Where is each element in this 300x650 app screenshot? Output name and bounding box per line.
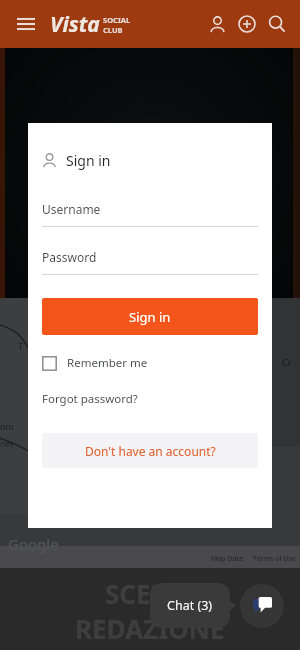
staticText: Cr [282, 356, 292, 368]
staticText: Terms of Use [253, 554, 296, 564]
button[interactable]: Chat (3) [150, 583, 230, 628]
staticText: SOCIAL [103, 15, 131, 25]
staticText: Password [42, 249, 97, 265]
staticText: Don't have an account? [85, 443, 216, 459]
button[interactable]: Account [202, 9, 232, 39]
staticText: nes [0, 438, 14, 449]
staticText: oni [0, 420, 14, 432]
staticText: Remember me [67, 355, 148, 371]
button[interactable]: Sign in [42, 298, 258, 335]
staticText: Sign in [66, 151, 111, 170]
button[interactable]: Remember me [42, 355, 148, 371]
staticText: Username [42, 201, 101, 217]
staticText: Chat (3) [167, 597, 213, 614]
button[interactable]: Password [42, 249, 258, 275]
staticText: SCELTA [105, 576, 196, 611]
staticText: T [18, 340, 24, 352]
button[interactable]: Don't have an account? [42, 433, 258, 468]
button[interactable]: Vista [50, 10, 131, 39]
staticText: Map Data [211, 554, 243, 564]
button[interactable]: Menu [10, 8, 42, 40]
button[interactable]: Username [42, 201, 258, 227]
staticText: REDAZIONE [75, 611, 225, 646]
staticText: CLUB [103, 25, 123, 35]
staticText: Vista [50, 10, 100, 39]
staticText: Forgot password? [42, 391, 138, 407]
button[interactable]: Chat [240, 584, 284, 628]
button[interactable]: Forgot password? [42, 391, 138, 407]
button[interactable]: Search [262, 9, 292, 39]
staticText: Google [8, 534, 59, 554]
button[interactable]: Add [232, 9, 262, 39]
staticText: Sign in [129, 308, 171, 326]
